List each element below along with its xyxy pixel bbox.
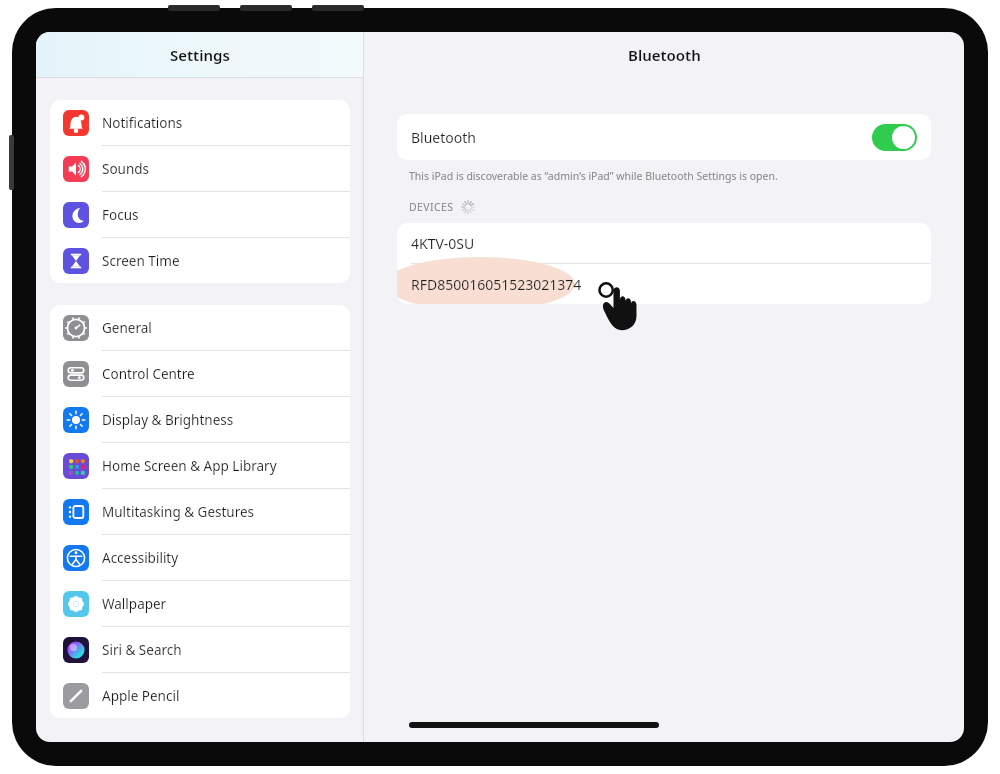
button[interactable]: Home Screen & App Library (50, 443, 350, 489)
button[interactable]: Accessibility (50, 535, 350, 581)
button[interactable]: Siri & Search (50, 627, 350, 673)
staticText: Home Screen & App Library (102, 457, 277, 475)
staticText: Settings (170, 45, 230, 65)
staticText: 4KTV-0SU (411, 234, 475, 253)
button[interactable]: Screen Time (50, 238, 350, 283)
button[interactable]: Focus (50, 192, 350, 238)
button[interactable]: Control Centre (50, 351, 350, 397)
staticText: Bluetooth (628, 45, 701, 65)
staticText: RFD850016051523021374 (411, 275, 582, 294)
staticText: DEVICES (409, 200, 454, 214)
button[interactable]: 4KTV-0SU (397, 223, 931, 263)
staticText: Multitasking & Gestures (102, 503, 255, 521)
staticText: Display & Brightness (102, 411, 234, 429)
staticText: Siri & Search (102, 641, 182, 659)
staticText: General (102, 319, 152, 337)
button[interactable]: Apple Pencil (50, 673, 350, 718)
other: Tap pointer (596, 280, 642, 330)
staticText: Sounds (102, 160, 150, 178)
staticText: Focus (102, 206, 139, 224)
staticText: This iPad is discoverable as “admin’s iP… (409, 169, 778, 183)
button[interactable]: Wallpaper (50, 581, 350, 627)
staticText: Control Centre (102, 365, 195, 383)
staticText: Wallpaper (102, 595, 167, 613)
button[interactable]: Sounds (50, 146, 350, 192)
button[interactable]: Display & Brightness (50, 397, 350, 443)
button[interactable]: Multitasking & Gestures (50, 489, 350, 535)
button[interactable]: RFD850016051523021374 (397, 264, 931, 304)
staticText: Notifications (102, 114, 183, 132)
button[interactable]: General (50, 305, 350, 351)
staticText: Accessibility (102, 549, 179, 567)
other: Bluetooth on (872, 124, 917, 151)
staticText: Screen Time (102, 252, 180, 270)
staticText: Bluetooth (411, 128, 476, 147)
staticText: Apple Pencil (102, 687, 180, 705)
button[interactable]: Notifications (50, 100, 350, 146)
button[interactable]: Bluetooth (397, 114, 931, 160)
